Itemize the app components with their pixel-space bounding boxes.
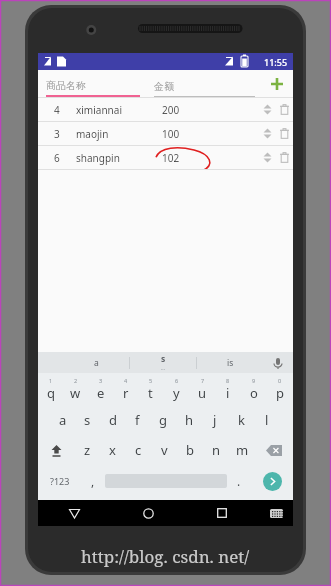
button[interactable]: Recent apps (185, 500, 259, 526)
button[interactable]: 0 (267, 373, 293, 405)
button[interactable]: 1 (38, 373, 63, 405)
button[interactable]: j (202, 405, 228, 435)
button[interactable]: h (176, 405, 202, 435)
staticText: 100 (162, 127, 180, 141)
staticText: 7 (201, 377, 205, 384)
button[interactable]: Enter (251, 465, 293, 497)
button[interactable]: Delete (275, 98, 293, 121)
staticText: 11:55 (264, 56, 288, 68)
staticText: 4 (54, 103, 60, 117)
button[interactable]: x (100, 435, 125, 465)
staticText: 2 (74, 377, 78, 384)
button[interactable]: m (229, 435, 255, 465)
button[interactable]: Edit quantity (259, 122, 275, 145)
button[interactable]: 8 (215, 373, 241, 405)
button[interactable]: f (125, 405, 150, 435)
button[interactable]: v (151, 435, 177, 465)
button[interactable]: z (75, 435, 100, 465)
button[interactable]: 4 (113, 373, 138, 405)
button[interactable]: 3 (38, 122, 293, 145)
staticText: e (97, 384, 105, 402)
staticText: 8 (226, 377, 230, 384)
button[interactable]: Shift (38, 435, 75, 465)
staticText: c (135, 441, 142, 459)
staticText: 200 (162, 103, 180, 117)
button[interactable]: is (197, 352, 263, 373)
staticText: d (109, 411, 117, 429)
button[interactable]: a (50, 405, 75, 435)
button[interactable]: 6 (38, 146, 293, 169)
button[interactable]: , (81, 465, 105, 497)
staticText: 5 (149, 377, 153, 384)
button[interactable]: 5 (138, 373, 163, 405)
button[interactable]: d (100, 405, 125, 435)
staticText: o (250, 384, 258, 402)
staticText: x (109, 441, 116, 459)
staticText: p (276, 384, 284, 402)
button[interactable]: 3 (88, 373, 113, 405)
button[interactable]: a (64, 352, 129, 373)
button[interactable]: 6 (163, 373, 189, 405)
staticText: 3 (99, 377, 103, 384)
button[interactable]: 2 (63, 373, 88, 405)
button[interactable]: 9 (241, 373, 267, 405)
button[interactable]: ?123 (38, 465, 81, 497)
staticText: l (265, 411, 269, 429)
staticText: 0 (278, 377, 282, 384)
button[interactable]: b (177, 435, 203, 465)
staticText: y (173, 384, 180, 402)
staticText: 6 (175, 377, 179, 384)
staticText: i (226, 384, 230, 402)
button[interactable]: Edit quantity (259, 146, 275, 169)
staticText: m (236, 441, 249, 459)
staticText: 商品名称 (46, 79, 86, 92)
staticText: 4 (124, 377, 128, 384)
button[interactable]: 7 (189, 373, 215, 405)
button[interactable]: Add (261, 70, 293, 97)
staticText: t (148, 384, 153, 402)
staticText: http://blog. csdn. net/ (81, 545, 250, 568)
staticText: shangpin (76, 151, 120, 165)
staticText: ... (161, 365, 166, 372)
staticText: a (59, 411, 67, 429)
button[interactable]: Voice input (263, 352, 293, 373)
button[interactable]: k (228, 405, 254, 435)
button[interactable]: n (203, 435, 229, 465)
button[interactable]: . (227, 465, 251, 497)
staticText: s (84, 411, 91, 429)
staticText: k (238, 411, 245, 429)
staticText: 1 (49, 377, 53, 384)
button[interactable]: Delete (275, 122, 293, 145)
staticText: j (213, 411, 217, 429)
button[interactable]: c (125, 435, 151, 465)
staticText: w (70, 384, 81, 402)
button[interactable]: Edit quantity (259, 98, 275, 121)
staticText: , (91, 473, 95, 489)
staticText: z (84, 441, 91, 459)
staticText: 金额 (154, 80, 174, 93)
staticText: 9 (252, 377, 256, 384)
button[interactable]: 4 (38, 98, 293, 121)
staticText: . (237, 473, 241, 489)
button[interactable]: s (130, 352, 196, 373)
staticText: r (123, 384, 129, 402)
button[interactable]: Delete (275, 146, 293, 169)
staticText: u (198, 384, 207, 402)
button[interactable]: g (150, 405, 176, 435)
button[interactable]: Back (38, 500, 111, 526)
button[interactable]: s (75, 405, 100, 435)
button[interactable]: l (254, 405, 280, 435)
staticText: n (212, 441, 221, 459)
staticText: maojin (76, 127, 109, 141)
button[interactable]: Home (111, 500, 185, 526)
button[interactable]: Keyboard switcher (259, 500, 293, 526)
staticText: ?123 (50, 475, 70, 487)
staticText: 3 (54, 127, 60, 141)
button[interactable]: Backspace (255, 435, 293, 465)
staticText: b (186, 441, 194, 459)
staticText: h (185, 411, 194, 429)
staticText: a (94, 357, 99, 369)
staticText: is (227, 357, 234, 369)
staticText: s (161, 353, 166, 365)
